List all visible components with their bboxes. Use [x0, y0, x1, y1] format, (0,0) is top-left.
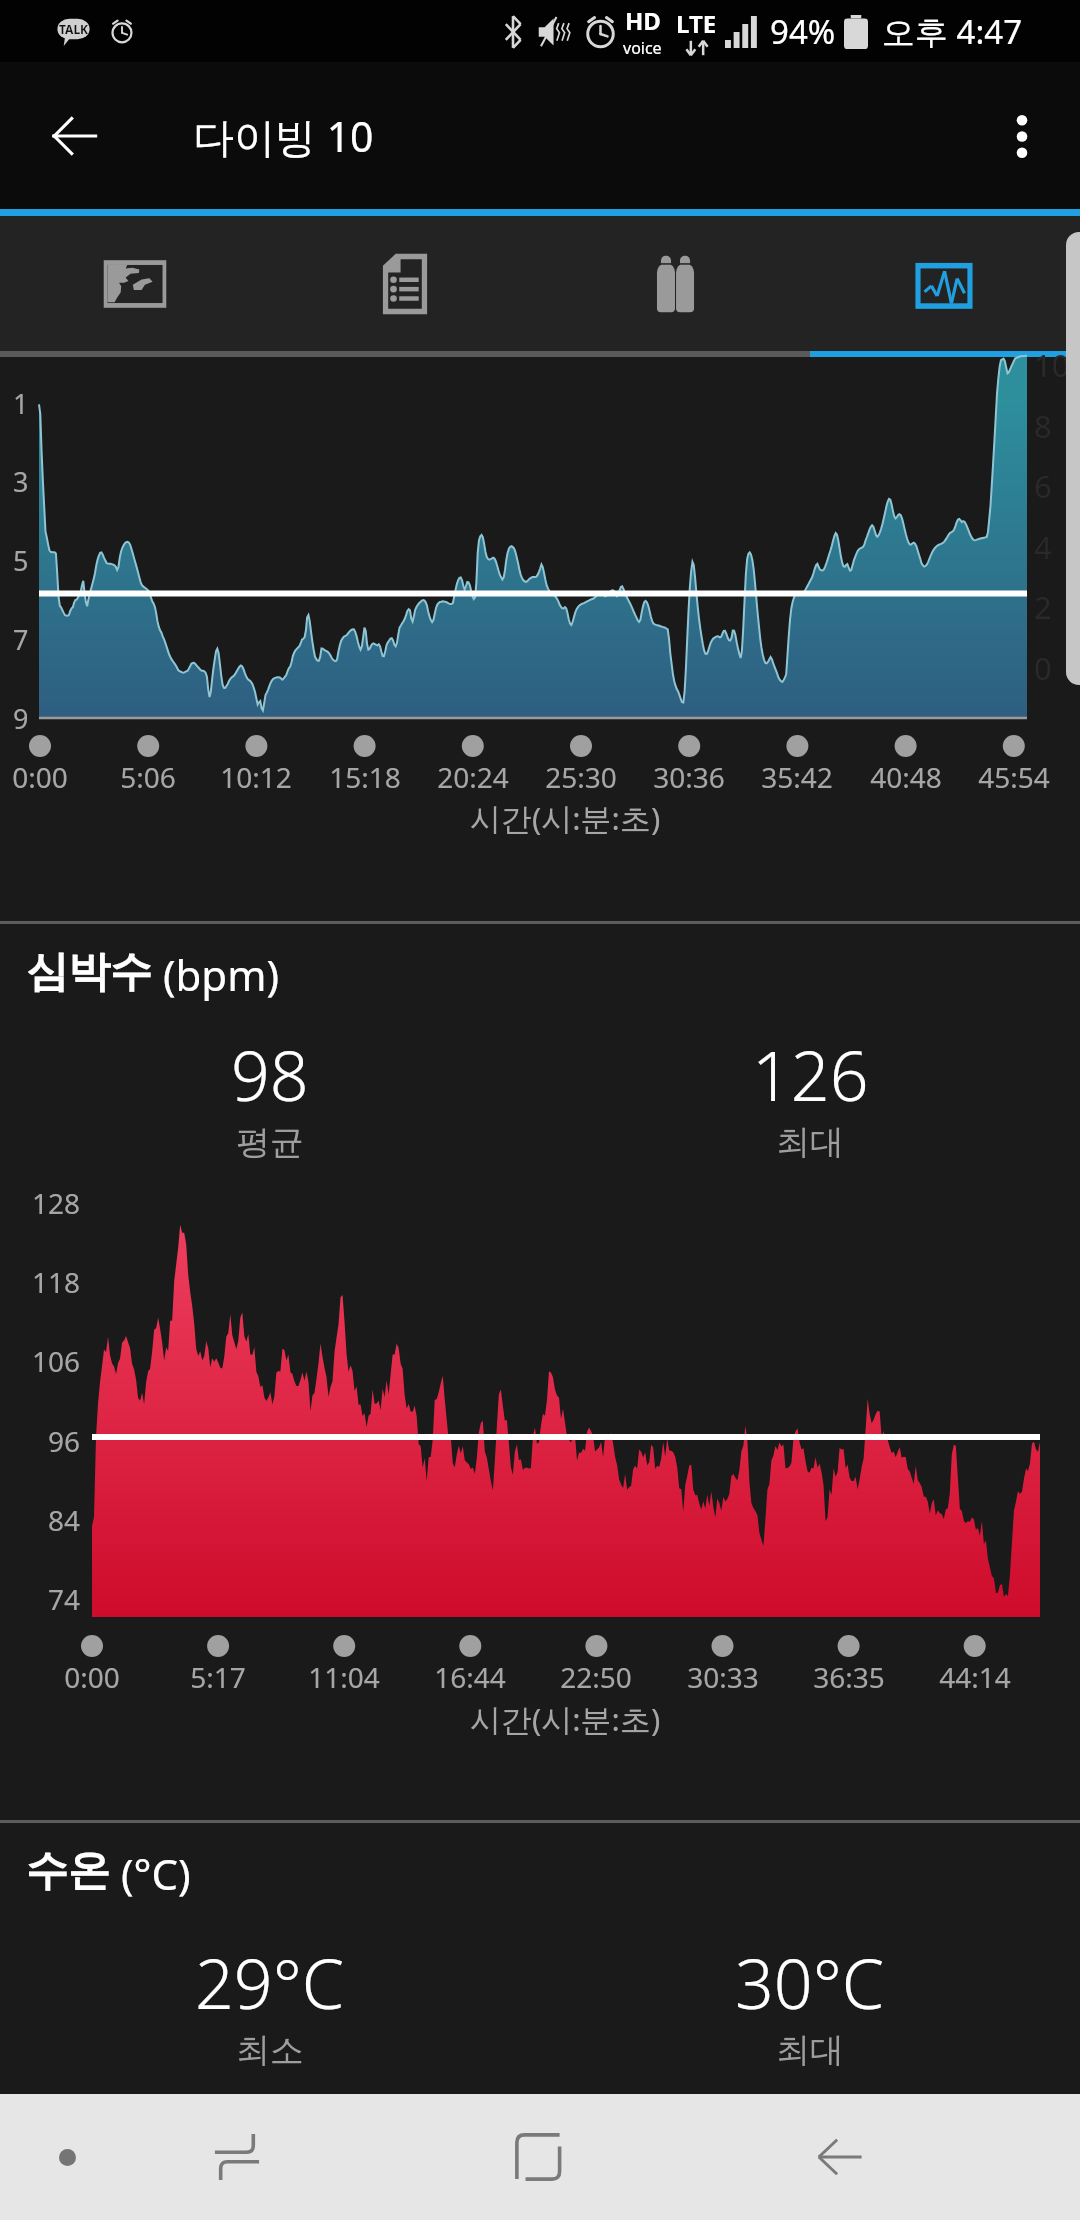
staticText: 다이빙 10	[193, 108, 374, 164]
staticText: 2	[1034, 586, 1052, 626]
button[interactable]: Home	[490, 2094, 586, 2220]
staticText: 118	[32, 1263, 81, 1301]
staticText: 7	[13, 621, 29, 658]
staticText: 40:48	[870, 758, 942, 796]
staticText: 74	[48, 1580, 81, 1618]
staticText: 5	[13, 542, 29, 579]
staticText: 4	[1034, 526, 1052, 566]
staticText: 0:00	[64, 1658, 120, 1696]
staticText: (°C)	[110, 1845, 191, 1902]
staticText: 10	[1034, 344, 1070, 384]
staticText: 44:14	[939, 1658, 1011, 1696]
staticText: 106	[32, 1342, 81, 1380]
staticText: 25:30	[545, 758, 617, 796]
button[interactable]: More options	[982, 96, 1062, 176]
staticText: voice	[623, 37, 662, 59]
staticText: 45:54	[978, 758, 1050, 796]
staticText: 10:12	[220, 758, 292, 796]
staticText: 오후 4:47	[882, 9, 1023, 54]
staticText: 84	[48, 1501, 81, 1539]
staticText: (bpm)	[152, 946, 280, 1003]
staticText: 20:24	[437, 758, 509, 796]
staticText: 96	[48, 1422, 81, 1460]
staticText: 22:50	[560, 1658, 632, 1696]
staticText: 16:44	[434, 1658, 506, 1696]
staticText: 8	[1034, 405, 1052, 445]
button[interactable]: Back	[792, 2094, 888, 2220]
staticText: 평균	[236, 1121, 304, 1164]
staticText: 30°C	[735, 1936, 885, 2029]
staticText: 30:36	[653, 758, 725, 796]
staticText: 시간(시:분:초)	[470, 797, 661, 839]
staticText: 35:42	[761, 758, 833, 796]
button[interactable]: Details tab	[270, 216, 540, 351]
staticText: 36:35	[813, 1658, 885, 1696]
staticText: 29°C	[195, 1936, 345, 2029]
staticText: 수온	[26, 1845, 110, 1898]
button[interactable]: Chart tab	[810, 216, 1080, 351]
button[interactable]: Map tab	[0, 216, 270, 351]
staticText: 30:33	[687, 1658, 759, 1696]
staticText: 126	[752, 1028, 869, 1121]
staticText: 15:18	[329, 758, 401, 796]
staticText: 최소	[236, 2029, 304, 2072]
staticText: 5:06	[120, 758, 176, 796]
staticText: 0:00	[12, 758, 68, 796]
staticText: 6	[1034, 465, 1052, 505]
staticText: 11:04	[308, 1658, 380, 1696]
button[interactable]: Menu	[19, 2094, 115, 2220]
button[interactable]: Tanks tab	[540, 216, 810, 351]
staticText: 5:17	[190, 1658, 246, 1696]
staticText: 시간(시:분:초)	[470, 1698, 661, 1740]
staticText: HD	[625, 4, 661, 37]
staticText: 94%	[770, 9, 836, 54]
staticText: 0	[1034, 647, 1052, 687]
staticText: 심박수	[26, 946, 152, 999]
staticText: 128	[32, 1184, 81, 1222]
staticText: 98	[231, 1028, 309, 1121]
button[interactable]: Back	[34, 96, 114, 176]
staticText: 9	[13, 700, 29, 737]
staticText: 3	[13, 463, 29, 500]
staticText: 최대	[776, 1121, 844, 1164]
button[interactable]: Recents	[189, 2094, 285, 2220]
staticText: LTE	[676, 7, 717, 40]
staticText: 최대	[776, 2029, 844, 2072]
staticText: TALK	[59, 21, 89, 37]
staticText: 1	[13, 385, 29, 422]
